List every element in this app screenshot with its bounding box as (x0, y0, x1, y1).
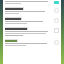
button[interactable]: Status (54, 1, 59, 4)
button[interactable]: Select option (54, 40, 59, 45)
button[interactable]: Select option (54, 8, 59, 13)
button[interactable]: Toggle option (54, 28, 59, 33)
button[interactable]: Status (5, 1, 59, 4)
button[interactable]: Toggle option (5, 27, 59, 36)
button[interactable]: Select option (54, 18, 59, 23)
button[interactable]: Select option (5, 39, 59, 46)
button[interactable]: Select option (5, 7, 59, 14)
button[interactable]: Select option (5, 17, 59, 24)
